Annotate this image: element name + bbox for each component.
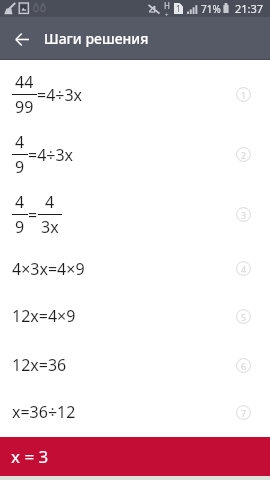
staticText: 2: [241, 149, 247, 161]
staticText: Шаги решения: [44, 29, 149, 48]
staticText: 3x: [41, 216, 59, 238]
staticText: 4×3x=4×9: [12, 258, 85, 280]
staticText: =: [28, 204, 38, 226]
staticText: =4÷3x: [28, 144, 74, 166]
staticText: x = 3: [11, 445, 49, 468]
staticText: 6: [241, 360, 247, 372]
button[interactable]: 12x=36: [0, 343, 270, 387]
staticText: 5: [241, 311, 247, 323]
staticText: 21:37: [235, 1, 264, 16]
button[interactable]: x = 3: [0, 437, 270, 476]
button[interactable]: 4: [0, 180, 270, 248]
staticText: 9: [15, 216, 25, 238]
staticText: 12x=36: [12, 354, 67, 376]
staticText: H: [164, 0, 170, 11]
staticText: 1: [241, 89, 247, 101]
button[interactable]: 12x=4×9: [0, 289, 270, 343]
button[interactable]: 4: [0, 128, 270, 180]
staticText: 44: [15, 71, 34, 93]
staticText: 3: [241, 209, 247, 221]
staticText: 9: [15, 156, 25, 178]
staticText: 99: [15, 96, 34, 118]
staticText: 4: [45, 191, 55, 213]
button[interactable]: 44: [0, 60, 270, 128]
staticText: 71%: [201, 2, 221, 16]
staticText: 1: [176, 3, 181, 14]
staticText: 12x=4×9: [12, 305, 76, 327]
button[interactable]: 4×3x=4×9: [0, 248, 270, 289]
staticText: 4: [241, 263, 247, 275]
staticText: x=36÷12: [12, 401, 76, 423]
button[interactable]: Back: [6, 23, 38, 55]
staticText: 4: [15, 131, 25, 153]
staticText: 4: [15, 191, 25, 213]
staticText: +: [165, 11, 169, 17]
button[interactable]: x=36÷12: [0, 387, 270, 437]
staticText: 7: [241, 407, 247, 419]
staticText: =4÷3x: [37, 84, 83, 106]
